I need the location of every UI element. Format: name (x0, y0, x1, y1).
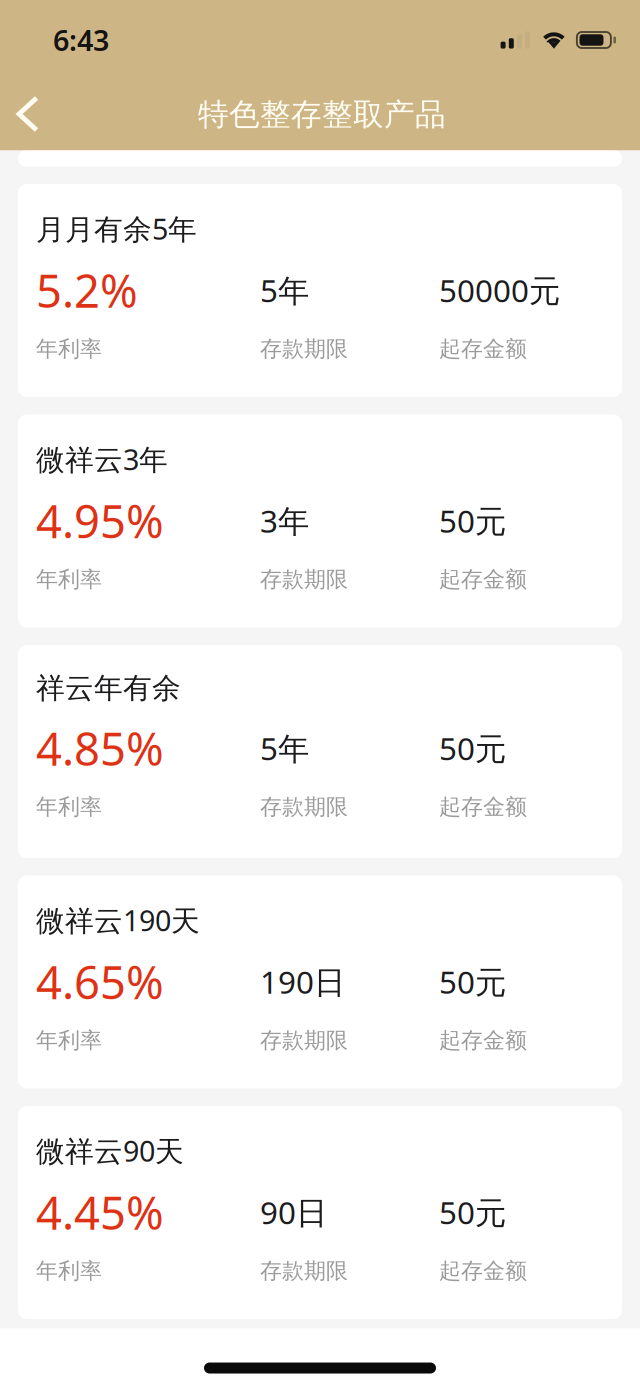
staticText: 起存金额 (439, 793, 527, 821)
staticText: 50000元 (439, 269, 560, 311)
staticText: 5年 (260, 269, 309, 311)
staticText: 5.2% (36, 259, 138, 321)
staticText: 微祥云190天 (36, 900, 200, 939)
staticText: 年利率 (36, 335, 102, 363)
staticText: 90日 (260, 1191, 327, 1233)
staticText: 起存金额 (439, 566, 527, 593)
button[interactable]: 微祥云3年 (18, 414, 622, 627)
staticText: 月月有余5年 (36, 209, 197, 248)
staticText: 6:43 (53, 20, 109, 59)
staticText: 4.95% (36, 490, 164, 551)
button[interactable]: 微祥云90天 (18, 1106, 622, 1319)
staticText: 微祥云3年 (36, 439, 168, 478)
staticText: 年利率 (36, 1257, 102, 1285)
staticText: 存款期限 (260, 1027, 348, 1054)
staticText: 存款期限 (260, 335, 348, 363)
staticText: 50元 (439, 499, 506, 542)
staticText: 祥云年有余 (36, 670, 181, 706)
staticText: 年利率 (36, 793, 102, 821)
staticText: 4.85% (36, 717, 164, 779)
staticText: 起存金额 (439, 335, 527, 363)
staticText: 起存金额 (439, 1027, 527, 1054)
button[interactable]: 微祥云190天 (18, 875, 622, 1088)
staticText: 5年 (260, 727, 309, 769)
staticText: 微祥云90天 (36, 1131, 184, 1170)
staticText: 50元 (439, 960, 506, 1003)
button[interactable]: 返回 (0, 76, 56, 149)
button[interactable]: 月月有余5年 (18, 184, 622, 397)
staticText: 年利率 (36, 566, 102, 593)
staticText: 190日 (260, 960, 345, 1003)
staticText: 50元 (439, 1191, 506, 1233)
staticText: 年利率 (36, 1027, 102, 1054)
staticText: 4.65% (36, 951, 164, 1012)
staticText: 起存金额 (439, 1257, 527, 1285)
staticText: 特色整存整取产品 (198, 95, 446, 134)
staticText: 存款期限 (260, 1257, 348, 1285)
staticText: 4.45% (36, 1181, 164, 1243)
staticText: 存款期限 (260, 793, 348, 821)
staticText: 3年 (260, 499, 309, 542)
staticText: 50元 (439, 727, 506, 769)
staticText: 存款期限 (260, 566, 348, 593)
button[interactable]: 祥云年有余 (18, 645, 622, 858)
